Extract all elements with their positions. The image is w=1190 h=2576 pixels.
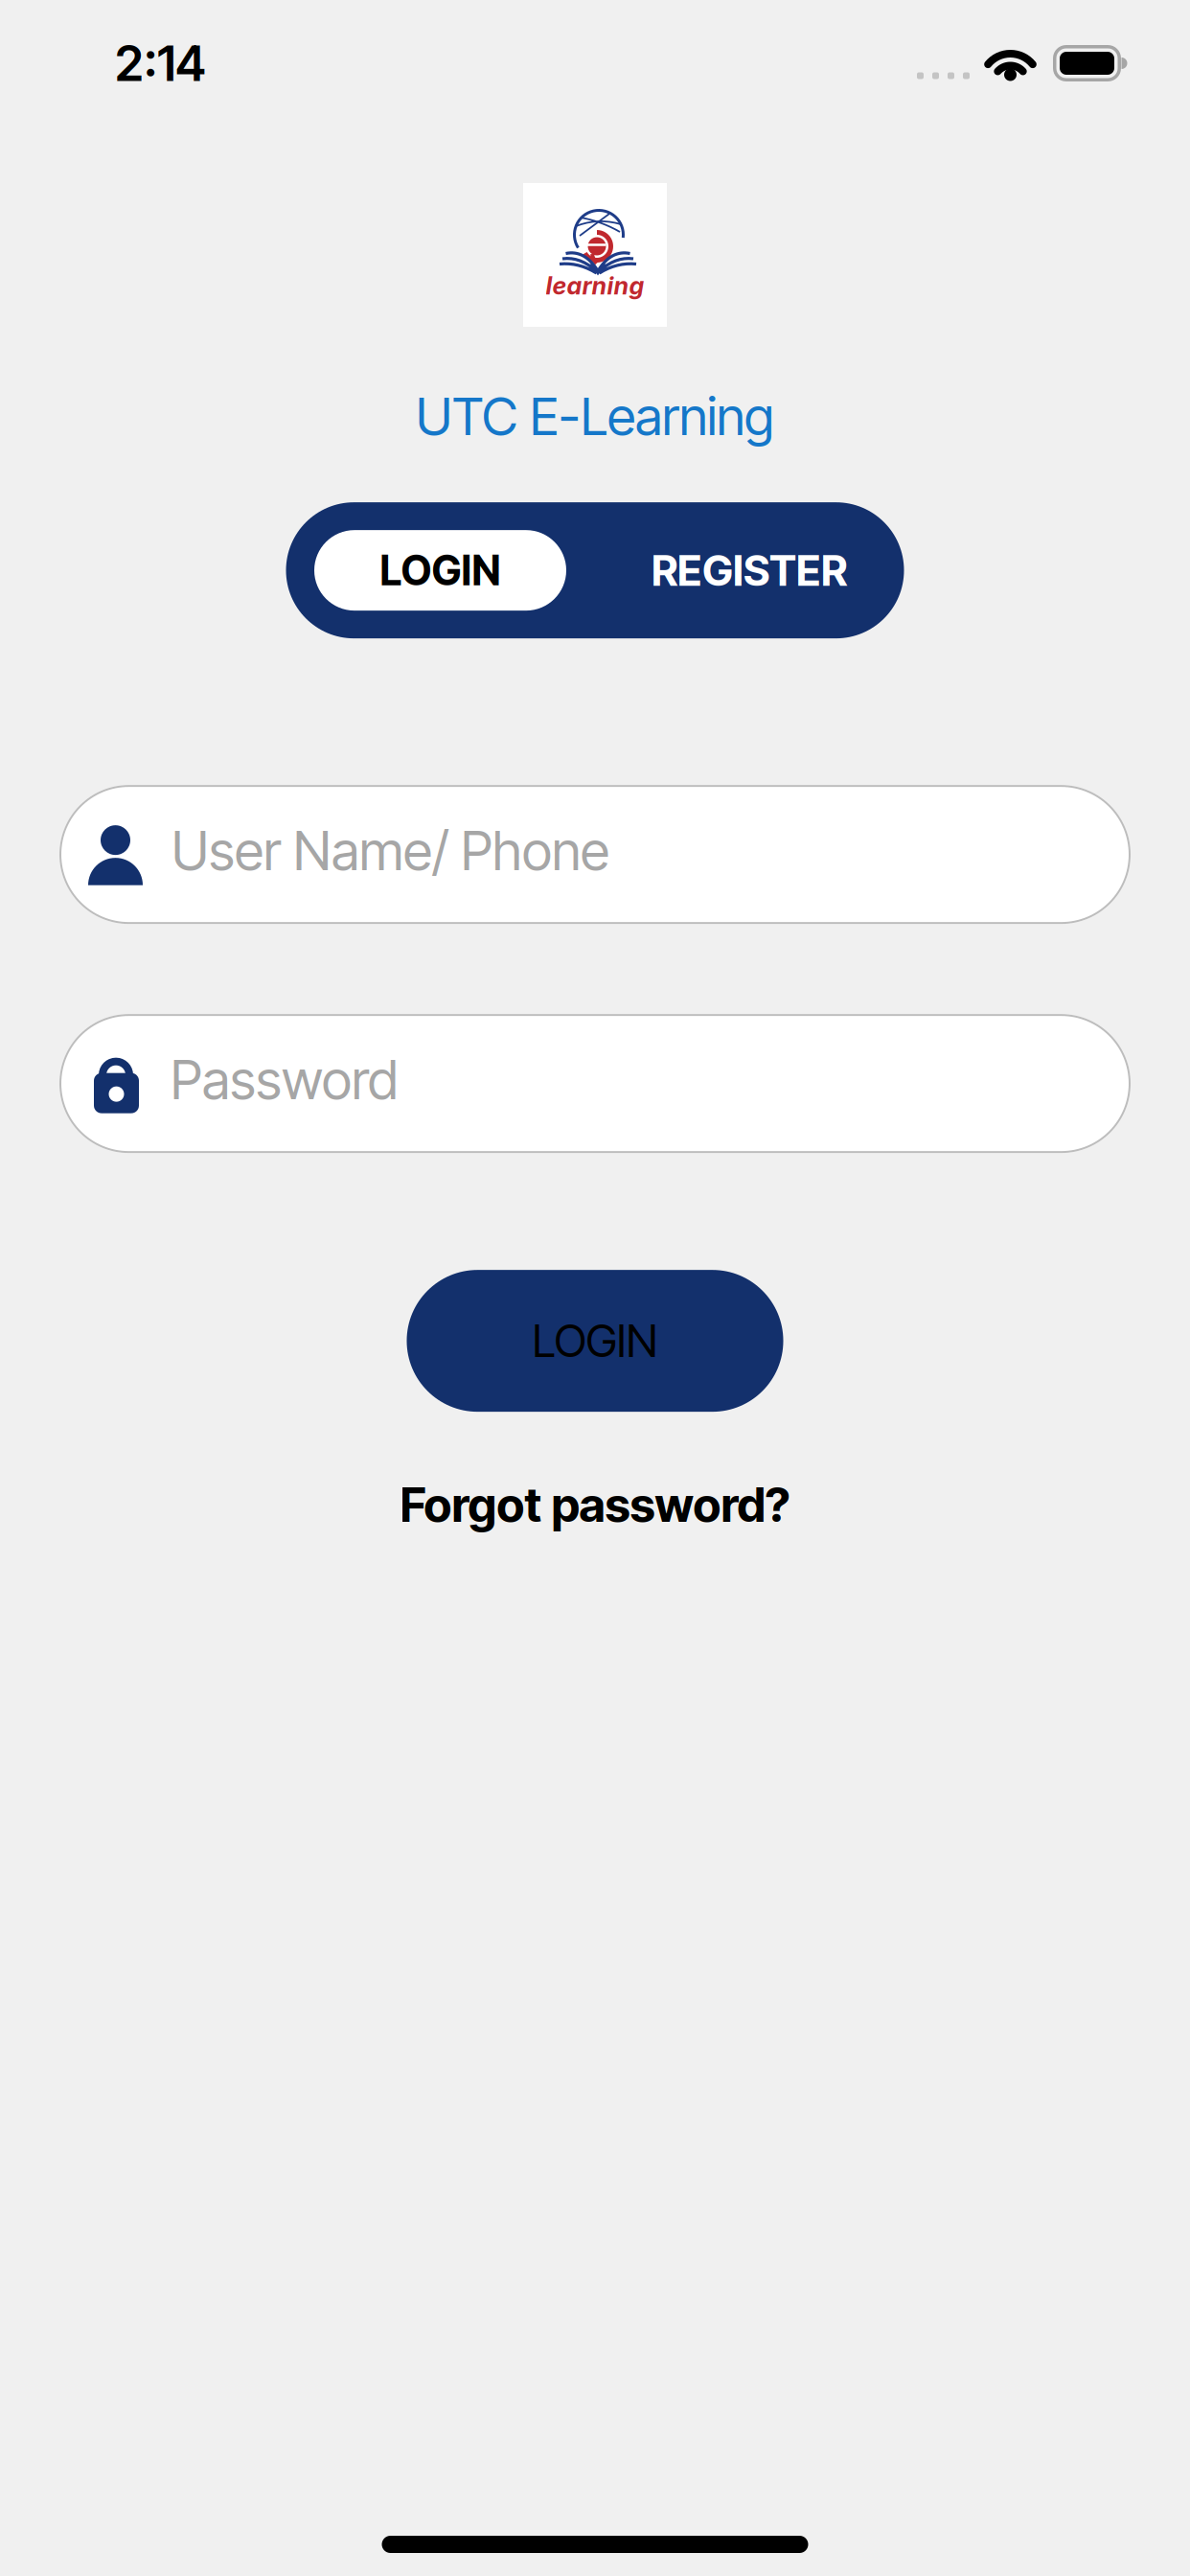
button[interactable]: Forgot password? (400, 1476, 790, 1533)
button[interactable]: REGISTER (595, 502, 904, 638)
staticText: LOGIN (380, 546, 501, 595)
staticText: Forgot password? (400, 1476, 790, 1533)
staticText: UTC E-Learning (416, 384, 774, 448)
button[interactable]: User Name/ Phone (59, 785, 1131, 924)
button[interactable]: LOGIN (314, 530, 566, 611)
staticText: REGISTER (652, 545, 847, 596)
staticText: learning (546, 271, 644, 300)
staticText: Password (171, 1047, 398, 1112)
staticText: User Name/ Phone (172, 818, 609, 883)
button[interactable]: Password (59, 1014, 1131, 1153)
staticText: LOGIN (532, 1314, 658, 1368)
staticText: 2:14 (115, 34, 206, 93)
button[interactable]: LOGIN (407, 1270, 783, 1412)
